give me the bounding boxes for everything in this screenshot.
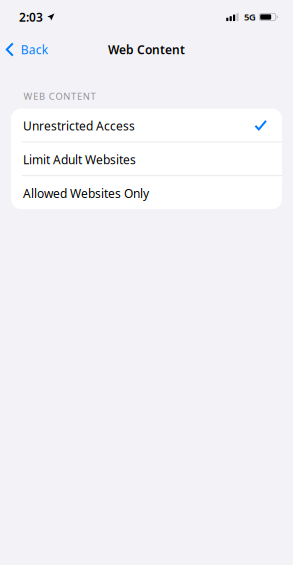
- staticText: Limit Adult Websites: [23, 152, 136, 167]
- staticText: 2:03: [19, 9, 43, 25]
- staticText: T: [90, 90, 95, 102]
- staticText: T: [71, 90, 76, 102]
- staticText: Allowed Websites Only: [23, 185, 149, 201]
- staticText: E: [77, 90, 82, 102]
- staticText: C: [49, 90, 55, 102]
- staticText: N: [63, 90, 70, 102]
- button[interactable]: Back: [0, 35, 58, 63]
- staticText: Unrestricted Access: [23, 118, 135, 134]
- staticText: O: [55, 90, 62, 102]
- staticText: N: [83, 90, 90, 102]
- button[interactable]: Limit Adult Websites: [11, 142, 282, 175]
- staticText: Web Content: [108, 41, 185, 57]
- button[interactable]: Unrestricted Access: [11, 109, 282, 142]
- staticText: E: [33, 90, 38, 102]
- button[interactable]: Allowed Websites Only: [11, 176, 282, 209]
- staticText: 5G: [244, 11, 256, 23]
- staticText: B: [39, 90, 45, 102]
- staticText: W: [23, 90, 32, 102]
- staticText: Back: [21, 41, 48, 57]
